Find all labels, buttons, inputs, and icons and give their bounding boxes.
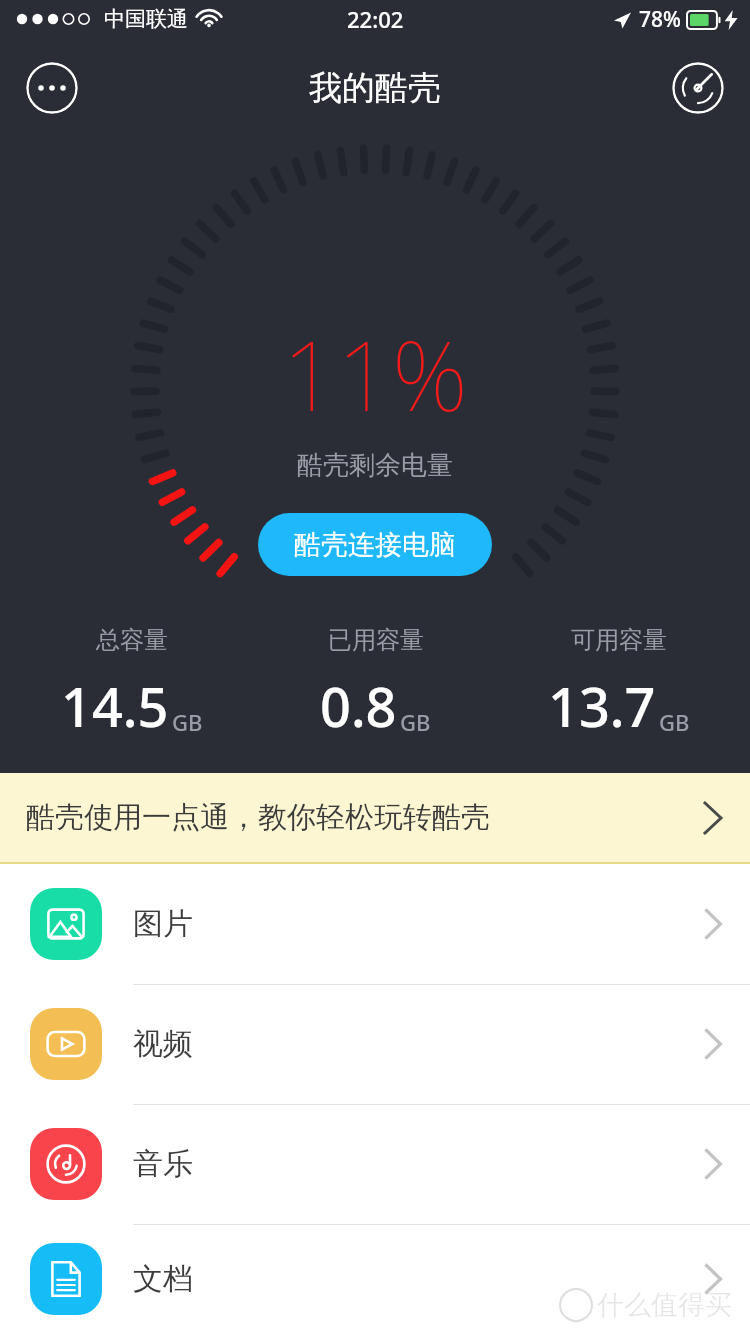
button[interactable]: 视频 [0,984,750,1104]
staticText: GB [659,707,690,737]
staticText: 文档 [133,1260,193,1298]
staticText: 我的酷壳 [309,67,441,109]
staticText: 酷壳使用一点通，教你轻松玩转酷壳 [26,799,490,836]
staticText: 音乐 [133,1145,193,1183]
staticText: 图片 [133,905,193,943]
button[interactable]: 酷壳连接电脑 [258,513,492,576]
button[interactable]: Speed test [672,62,724,114]
staticText: 78% [639,5,681,34]
staticText: 0.8 [320,669,397,743]
staticText: 14.5 [61,669,169,743]
staticText: GB [172,707,203,737]
button[interactable]: 文档 [0,1224,750,1334]
staticText: 11% [282,308,468,439]
button[interactable]: More options [26,62,78,114]
staticText: 酷壳连接电脑 [294,528,456,562]
staticText: GB [400,707,431,737]
staticText: 13.7 [548,669,656,743]
button[interactable]: 图片 [0,864,750,984]
staticText: 什么值得买 [597,1288,732,1322]
staticText: 22:02 [347,4,404,34]
button[interactable]: 音乐 [0,1104,750,1224]
staticText: 中国联通 [104,6,188,32]
staticText: 总容量 [96,625,168,655]
staticText: 可用容量 [571,625,667,655]
staticText: 酷壳剩余电量 [297,449,453,482]
staticText: 视频 [133,1025,193,1063]
button[interactable]: 酷壳使用一点通，教你轻松玩转酷壳 [0,773,750,862]
staticText: 已用容量 [328,625,424,655]
